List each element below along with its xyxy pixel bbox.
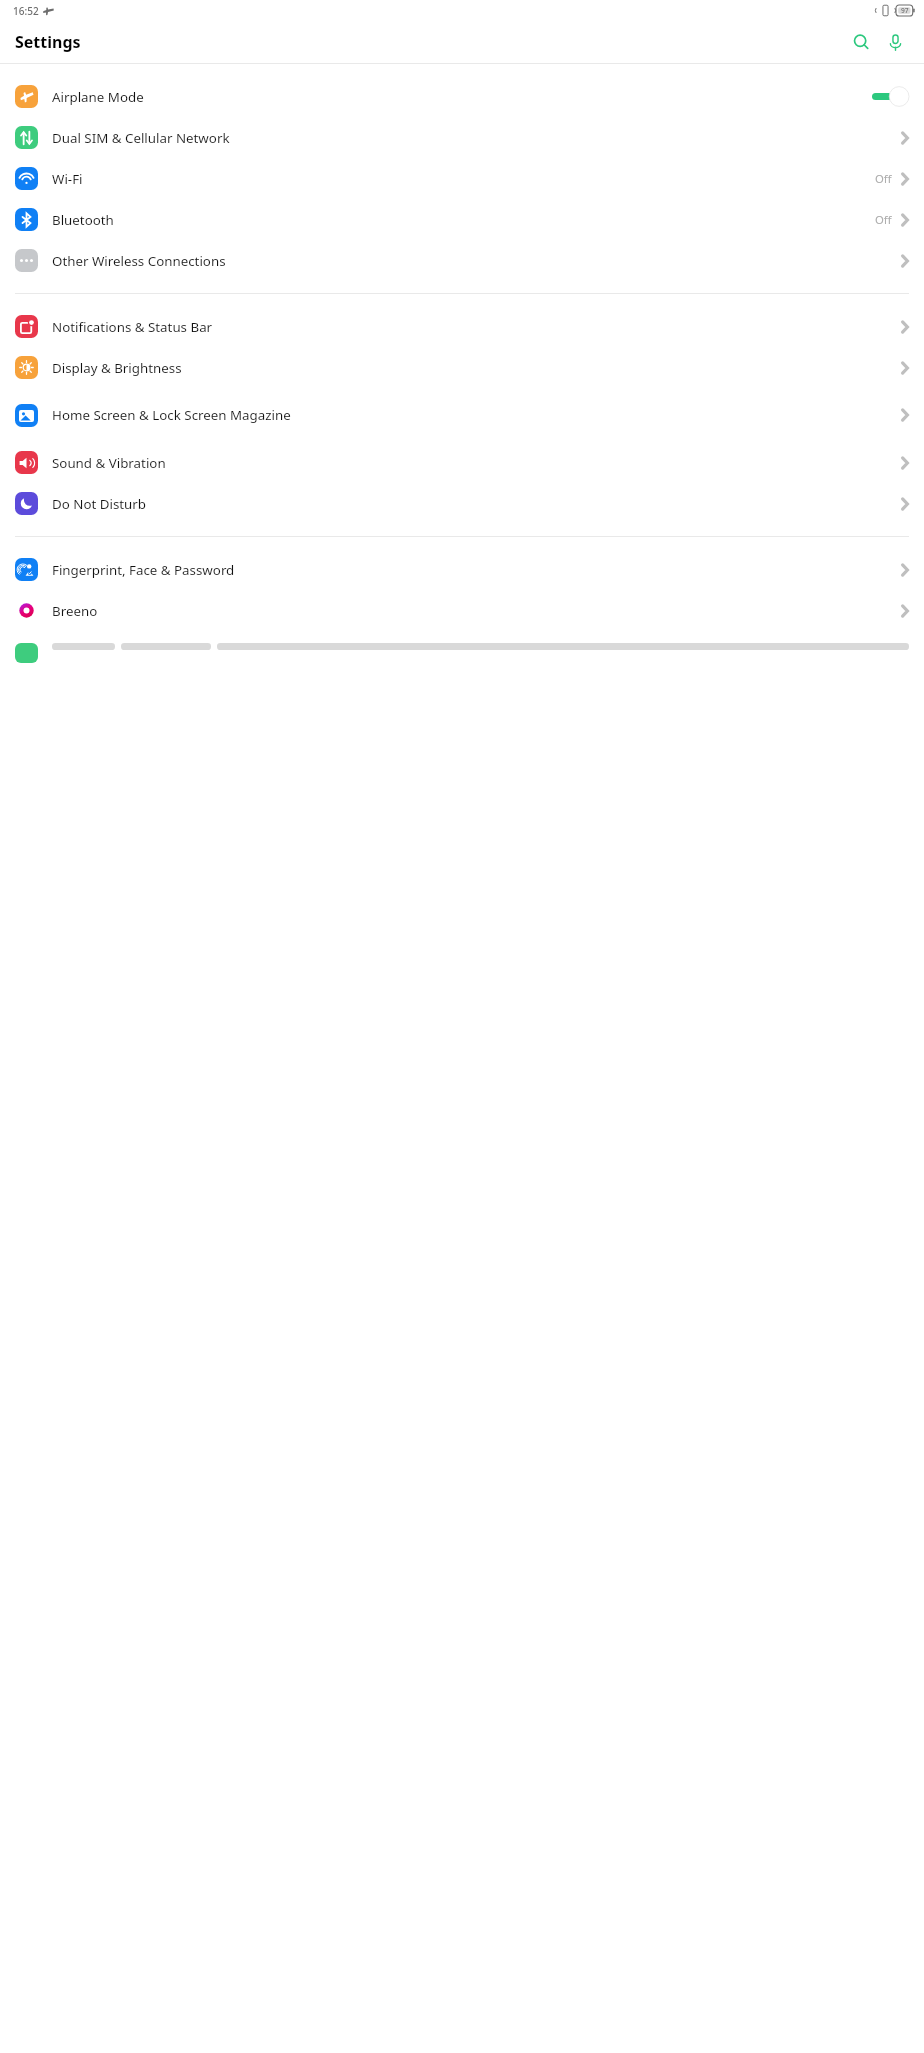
staticText: Fingerprint, Face & Password xyxy=(52,561,901,579)
button[interactable]: Notifications & Status Bar xyxy=(0,306,924,347)
staticText: Off xyxy=(875,212,892,227)
staticText: 16:52 xyxy=(13,4,39,18)
button[interactable]: Breeno xyxy=(0,590,924,631)
button[interactable]: Search xyxy=(847,28,876,57)
button[interactable]: Sound & Vibration xyxy=(0,442,924,483)
button[interactable]: Dual SIM & Cellular Network xyxy=(0,117,924,158)
staticText: Settings xyxy=(15,31,81,53)
staticText: Airplane Mode xyxy=(52,88,872,106)
staticText: Wi-Fi xyxy=(52,170,875,188)
staticText: Home Screen & Lock Screen Magazine xyxy=(52,406,901,424)
staticText: Do Not Disturb xyxy=(52,495,901,513)
staticText: Notifications & Status Bar xyxy=(52,318,901,336)
staticText: Other Wireless Connections xyxy=(52,252,901,270)
button[interactable]: Fingerprint, Face & Password xyxy=(0,549,924,590)
button[interactable]: Airplane Mode xyxy=(0,76,924,117)
staticText: Bluetooth xyxy=(52,211,875,229)
staticText: 97 xyxy=(901,6,909,15)
staticText: Off xyxy=(875,171,892,186)
button[interactable]: Other Wireless Connections xyxy=(0,240,924,281)
button[interactable]: Do Not Disturb xyxy=(0,483,924,524)
button[interactable]: Voice search xyxy=(881,28,910,57)
button[interactable] xyxy=(0,643,924,663)
button[interactable]: Home Screen & Lock Screen Magazine xyxy=(0,388,924,442)
staticText: Breeno xyxy=(52,602,901,620)
staticText: Sound & Vibration xyxy=(52,454,901,472)
button[interactable]: Display & Brightness xyxy=(0,347,924,388)
button[interactable]: Wi-Fi xyxy=(0,158,924,199)
staticText: Dual SIM & Cellular Network xyxy=(52,129,901,147)
button[interactable]: Bluetooth xyxy=(0,199,924,240)
staticText: Display & Brightness xyxy=(52,359,901,377)
button[interactable]: Airplane Mode toggle xyxy=(872,86,909,107)
